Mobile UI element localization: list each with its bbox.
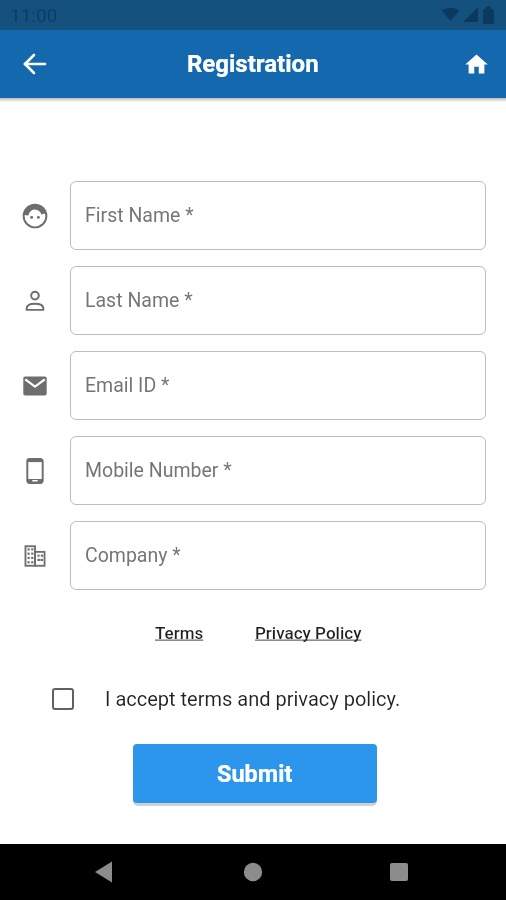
button[interactable]: Terms [155, 623, 204, 643]
staticText: Company * [85, 544, 181, 567]
staticText: First Name * [85, 204, 194, 227]
button[interactable]: Company * [70, 521, 486, 590]
button[interactable] [229, 848, 277, 896]
staticText: 11:00 [10, 4, 58, 26]
staticText: Email ID * [85, 374, 170, 397]
staticText: Registration [187, 50, 319, 78]
button[interactable] [81, 848, 129, 896]
button[interactable]: Email ID * [70, 351, 486, 420]
button[interactable] [454, 42, 498, 86]
button[interactable]: I accept terms and privacy policy. [52, 687, 506, 710]
button[interactable] [13, 42, 57, 86]
staticText: I accept terms and privacy policy. [105, 687, 401, 710]
staticText: Mobile Number * [85, 459, 232, 482]
button[interactable]: Mobile Number * [70, 436, 486, 505]
staticText: Submit [217, 760, 293, 788]
button[interactable]: Privacy Policy [255, 623, 362, 643]
button[interactable]: First Name * [70, 181, 486, 250]
staticText: Last Name * [85, 289, 193, 312]
button[interactable]: Last Name * [70, 266, 486, 335]
button[interactable] [375, 848, 423, 896]
button[interactable]: Submit [133, 744, 377, 803]
